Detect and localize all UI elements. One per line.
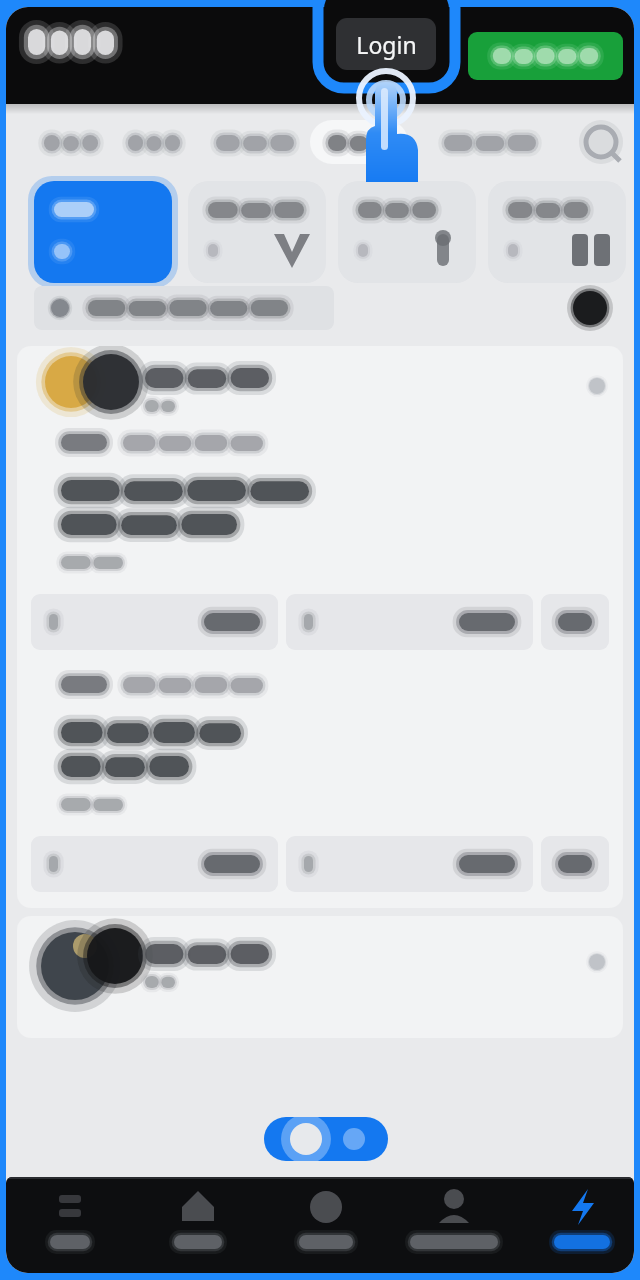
button[interactable]: Login [336,18,436,70]
button[interactable] [15,172,165,276]
button[interactable] [468,32,623,80]
button[interactable] [117,114,228,172]
button[interactable] [17,916,623,1038]
button[interactable] [452,114,564,172]
button[interactable]: Home [131,1177,256,1273]
button[interactable] [541,594,609,650]
button[interactable] [541,836,609,892]
button[interactable] [228,114,340,172]
button[interactable] [165,172,315,276]
button[interactable] [6,114,117,172]
button[interactable] [6,276,634,338]
button[interactable]: Promotions [382,1177,508,1273]
button[interactable] [31,594,278,650]
button[interactable]: Menu [6,1177,131,1273]
button[interactable] [315,172,465,276]
button[interactable]: Search [564,114,634,172]
button[interactable] [31,836,278,892]
button[interactable] [340,114,452,172]
staticText: Login [356,29,417,60]
button[interactable] [286,836,533,892]
button[interactable] [17,346,623,908]
button[interactable] [465,172,615,276]
button[interactable]: Sports [508,1177,634,1273]
button[interactable] [286,594,533,650]
button[interactable]: Live [264,1117,388,1161]
button[interactable]: Casino [256,1177,382,1273]
